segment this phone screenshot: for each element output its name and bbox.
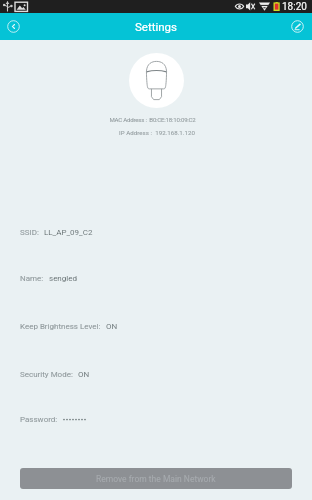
staticText: SSID: — [20, 228, 39, 237]
staticText: Keep Brightness Level: — [20, 322, 101, 331]
staticText: Security Mode: — [20, 370, 73, 379]
button[interactable]: Keep Brightness Level: — [20, 319, 292, 333]
staticText: Remove from the Main Network — [96, 474, 216, 484]
button[interactable]: SSID: — [20, 225, 292, 239]
button[interactable]: Back — [3, 16, 24, 37]
button[interactable]: Remove from the Main Network — [20, 468, 292, 489]
button[interactable]: Security Mode: — [20, 367, 292, 381]
staticText: sengled — [49, 274, 77, 283]
staticText: 18:20 — [282, 1, 307, 13]
staticText: Settings — [135, 20, 177, 33]
button[interactable]: Edit — [287, 16, 308, 37]
button[interactable]: Name: — [20, 271, 292, 285]
staticText: ON — [78, 370, 90, 379]
button[interactable]: Password: — [20, 412, 292, 426]
staticText: IP Address : 192.168.1.120 — [119, 129, 195, 136]
staticText: LL_AP_09_C2 — [44, 228, 93, 237]
staticText: Name: — [20, 274, 44, 283]
staticText: MAC Address : B0:CE:18:10:09:C2 — [109, 116, 196, 123]
staticText: Password: — [20, 415, 58, 424]
staticText: ON — [106, 322, 118, 331]
